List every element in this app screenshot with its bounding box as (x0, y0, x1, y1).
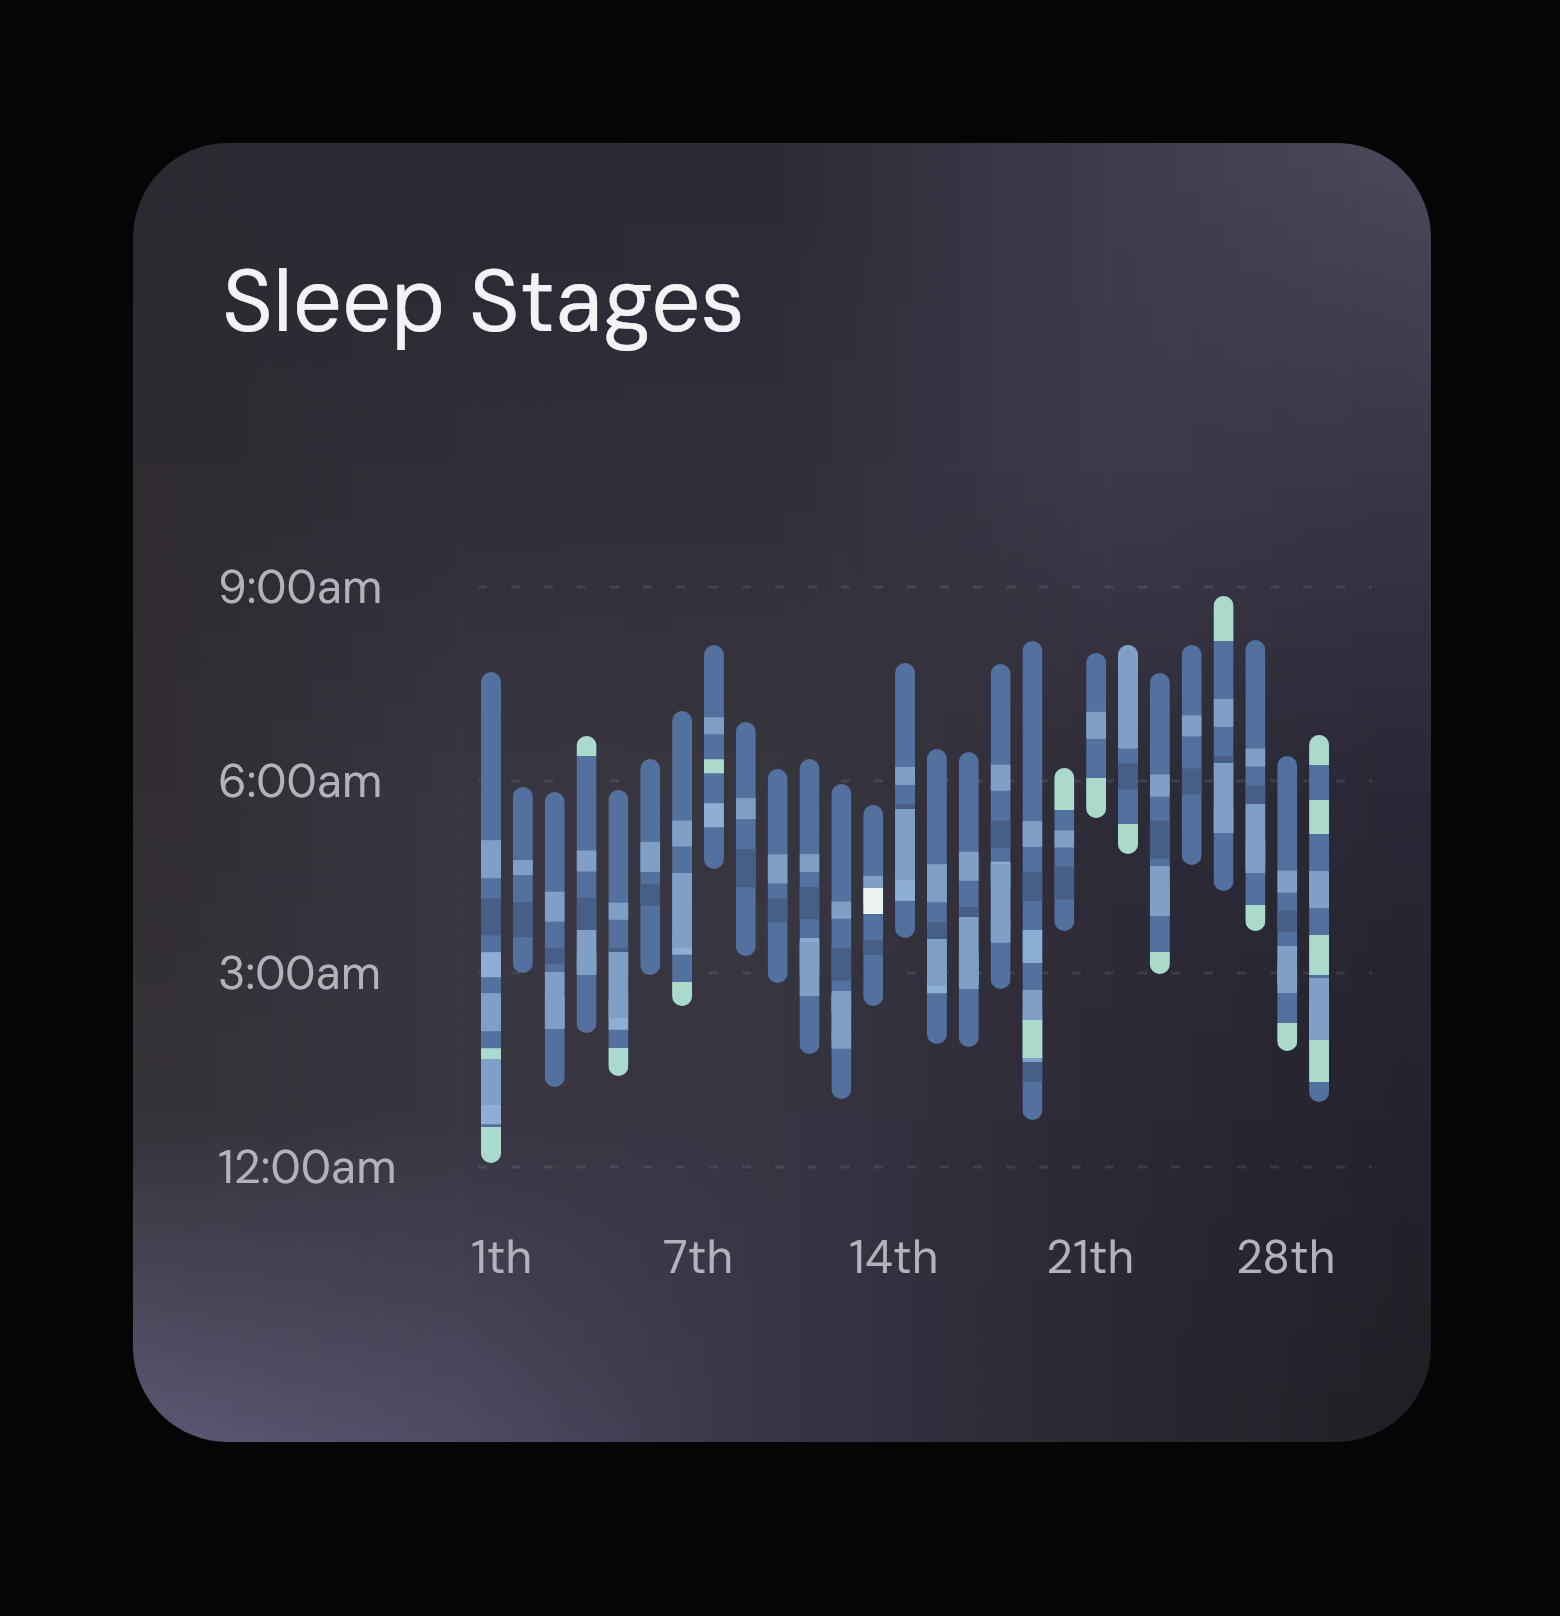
staticText: 7th (663, 1227, 734, 1287)
staticText: 14th (849, 1227, 939, 1287)
staticText: 6:00am (218, 751, 383, 811)
staticText: 1th (471, 1227, 533, 1287)
staticText: 21th (1046, 1227, 1135, 1287)
button[interactable] (133, 143, 1431, 1442)
staticText: 9:00am (218, 557, 383, 617)
staticText: Sleep Stages (222, 245, 745, 358)
staticText: 28th (1236, 1227, 1336, 1287)
staticText: 3:00am (218, 943, 382, 1003)
staticText: 12:00am (218, 1137, 397, 1197)
